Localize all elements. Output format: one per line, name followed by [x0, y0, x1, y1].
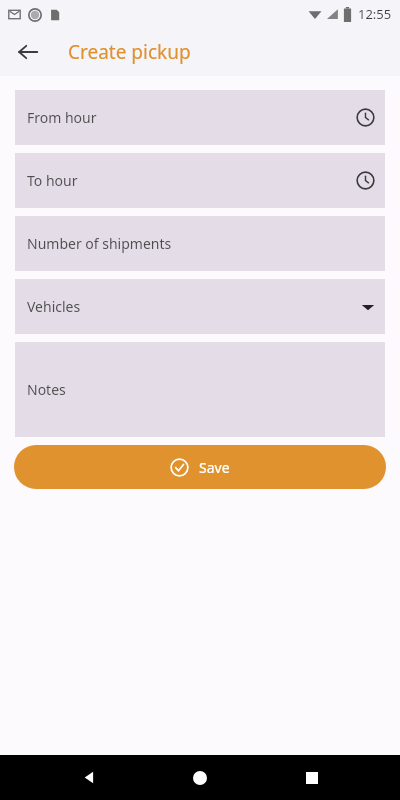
staticText: From hour: [27, 108, 97, 127]
staticText: Save: [199, 458, 230, 477]
button[interactable]: Vehicles: [15, 279, 385, 334]
button[interactable]: Number of shipments: [15, 216, 385, 271]
other: Expand: [361, 302, 375, 312]
button[interactable]: Save: [14, 445, 386, 489]
staticText: Create pickup: [68, 39, 191, 65]
button[interactable]: Recents: [289, 755, 335, 800]
other: Pick time: [356, 108, 375, 127]
staticText: 12:55: [358, 5, 392, 23]
button[interactable]: Notes: [15, 342, 385, 437]
staticText: To hour: [27, 171, 78, 190]
staticText: Number of shipments: [27, 234, 172, 253]
staticText: Vehicles: [27, 297, 81, 316]
other: Pick time: [356, 171, 375, 190]
staticText: Notes: [27, 380, 66, 399]
button[interactable]: Back: [66, 755, 112, 800]
button[interactable]: To hour: [15, 153, 385, 208]
button[interactable]: From hour: [15, 90, 385, 145]
button[interactable]: Home: [177, 755, 223, 800]
button[interactable]: Back: [8, 32, 48, 72]
